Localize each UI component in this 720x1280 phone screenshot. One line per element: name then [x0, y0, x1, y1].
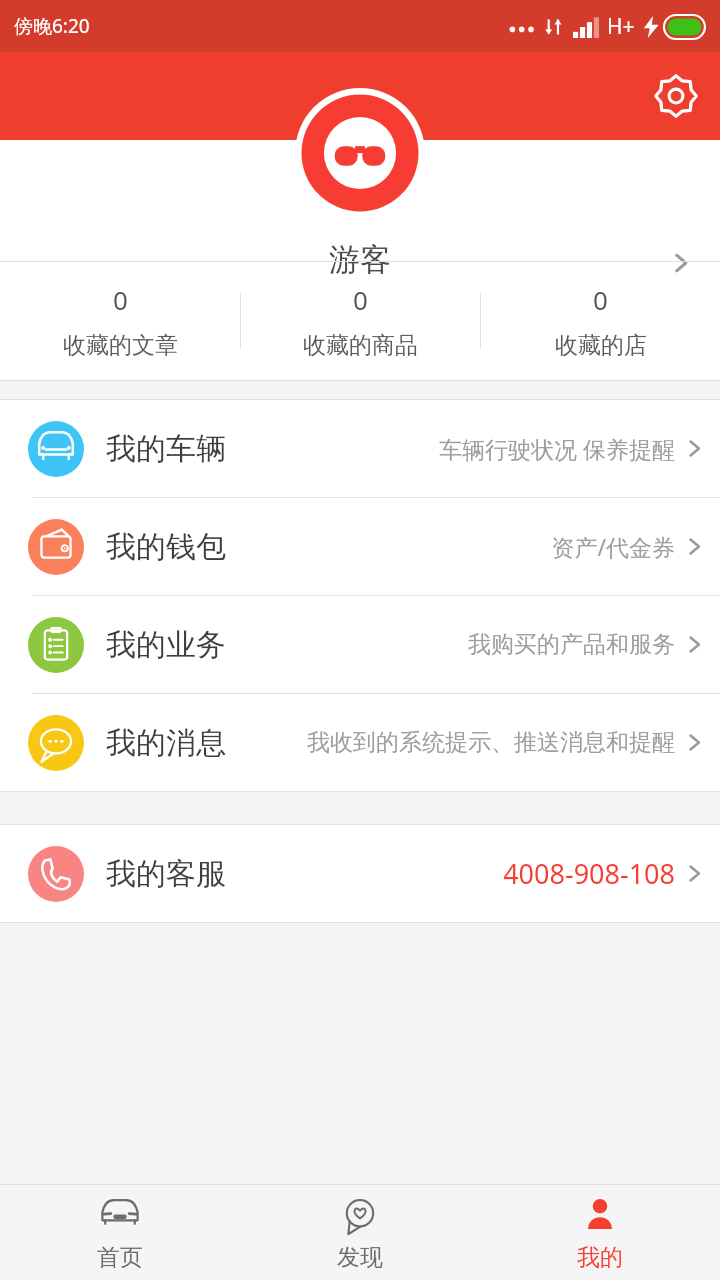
- staticText: 我收到的系统提示、推送消息和提醒: [307, 728, 675, 757]
- staticText: H+: [607, 12, 635, 41]
- staticText: 我的: [577, 1243, 623, 1272]
- button[interactable]: 我的钱包: [0, 498, 720, 595]
- button[interactable]: 我的消息: [0, 694, 720, 791]
- button[interactable]: 0: [0, 262, 240, 380]
- staticText: 车辆行驶状况 保养提醒: [439, 433, 675, 464]
- button[interactable]: 我的车辆: [0, 400, 720, 497]
- button[interactable]: Profile details: [656, 238, 706, 288]
- button[interactable]: 我的业务: [0, 596, 720, 693]
- button[interactable]: 首页: [0, 1185, 240, 1280]
- staticText: 4008-908-108: [503, 855, 675, 892]
- staticText: 0: [113, 282, 128, 317]
- staticText: 首页: [97, 1243, 143, 1272]
- button[interactable]: [295, 88, 425, 218]
- button[interactable]: 发现: [240, 1185, 480, 1280]
- staticText: 我的消息: [106, 724, 226, 762]
- staticText: 傍晚6:20: [14, 13, 90, 39]
- staticText: 游客: [329, 240, 391, 279]
- staticText: 0: [593, 282, 608, 317]
- button[interactable]: 0: [481, 262, 720, 380]
- staticText: 我购买的产品和服务: [468, 630, 675, 659]
- staticText: 发现: [337, 1243, 383, 1272]
- staticText: 0: [353, 282, 368, 317]
- button[interactable]: 我的: [480, 1185, 720, 1280]
- staticText: 资产/代金券: [551, 531, 675, 562]
- staticText: 收藏的商品: [303, 331, 418, 360]
- button[interactable]: 我的客服: [0, 825, 720, 922]
- staticText: 收藏的店: [555, 331, 647, 360]
- button[interactable]: Settings: [648, 68, 704, 124]
- staticText: 我的客服: [106, 855, 226, 893]
- staticText: 收藏的文章: [63, 331, 178, 360]
- staticText: 我的业务: [106, 626, 226, 664]
- staticText: 我的钱包: [106, 528, 226, 566]
- button[interactable]: 0: [241, 262, 480, 380]
- staticText: 我的车辆: [106, 430, 226, 468]
